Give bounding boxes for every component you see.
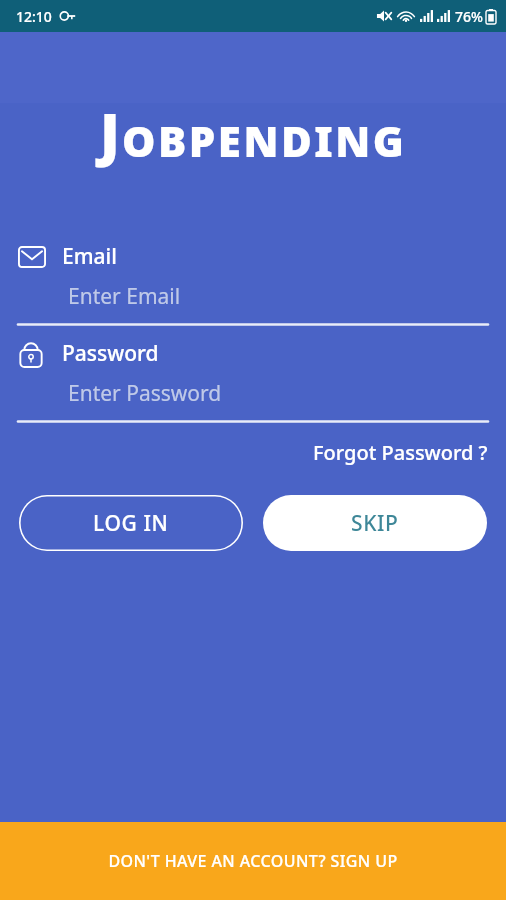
staticText: Enter Email — [68, 282, 181, 311]
staticText: Password — [62, 339, 159, 368]
button[interactable]: Password — [0, 338, 506, 423]
button[interactable]: Forgot Password ? — [311, 435, 490, 470]
staticText: OBPENDING — [122, 112, 407, 169]
other: Password — [18, 338, 44, 368]
staticText: Forgot Password ? — [313, 439, 488, 466]
staticText: DON'T HAVE AN ACCOUNT? SIGN UP — [108, 850, 398, 872]
staticText: Enter Password — [68, 379, 222, 408]
staticText: LOG IN — [93, 509, 169, 538]
staticText: J — [100, 95, 122, 171]
button[interactable]: LOG IN — [19, 495, 243, 551]
staticText: 12:10 — [16, 7, 52, 26]
other: Email — [18, 246, 46, 268]
staticText: SKIP — [351, 509, 399, 538]
button[interactable]: SKIP — [263, 495, 487, 551]
button[interactable]: DON'T HAVE AN ACCOUNT? SIGN UP — [0, 822, 506, 900]
staticText: Email — [62, 242, 117, 271]
button[interactable]: Email — [0, 242, 506, 326]
staticText: 76% — [455, 7, 483, 26]
